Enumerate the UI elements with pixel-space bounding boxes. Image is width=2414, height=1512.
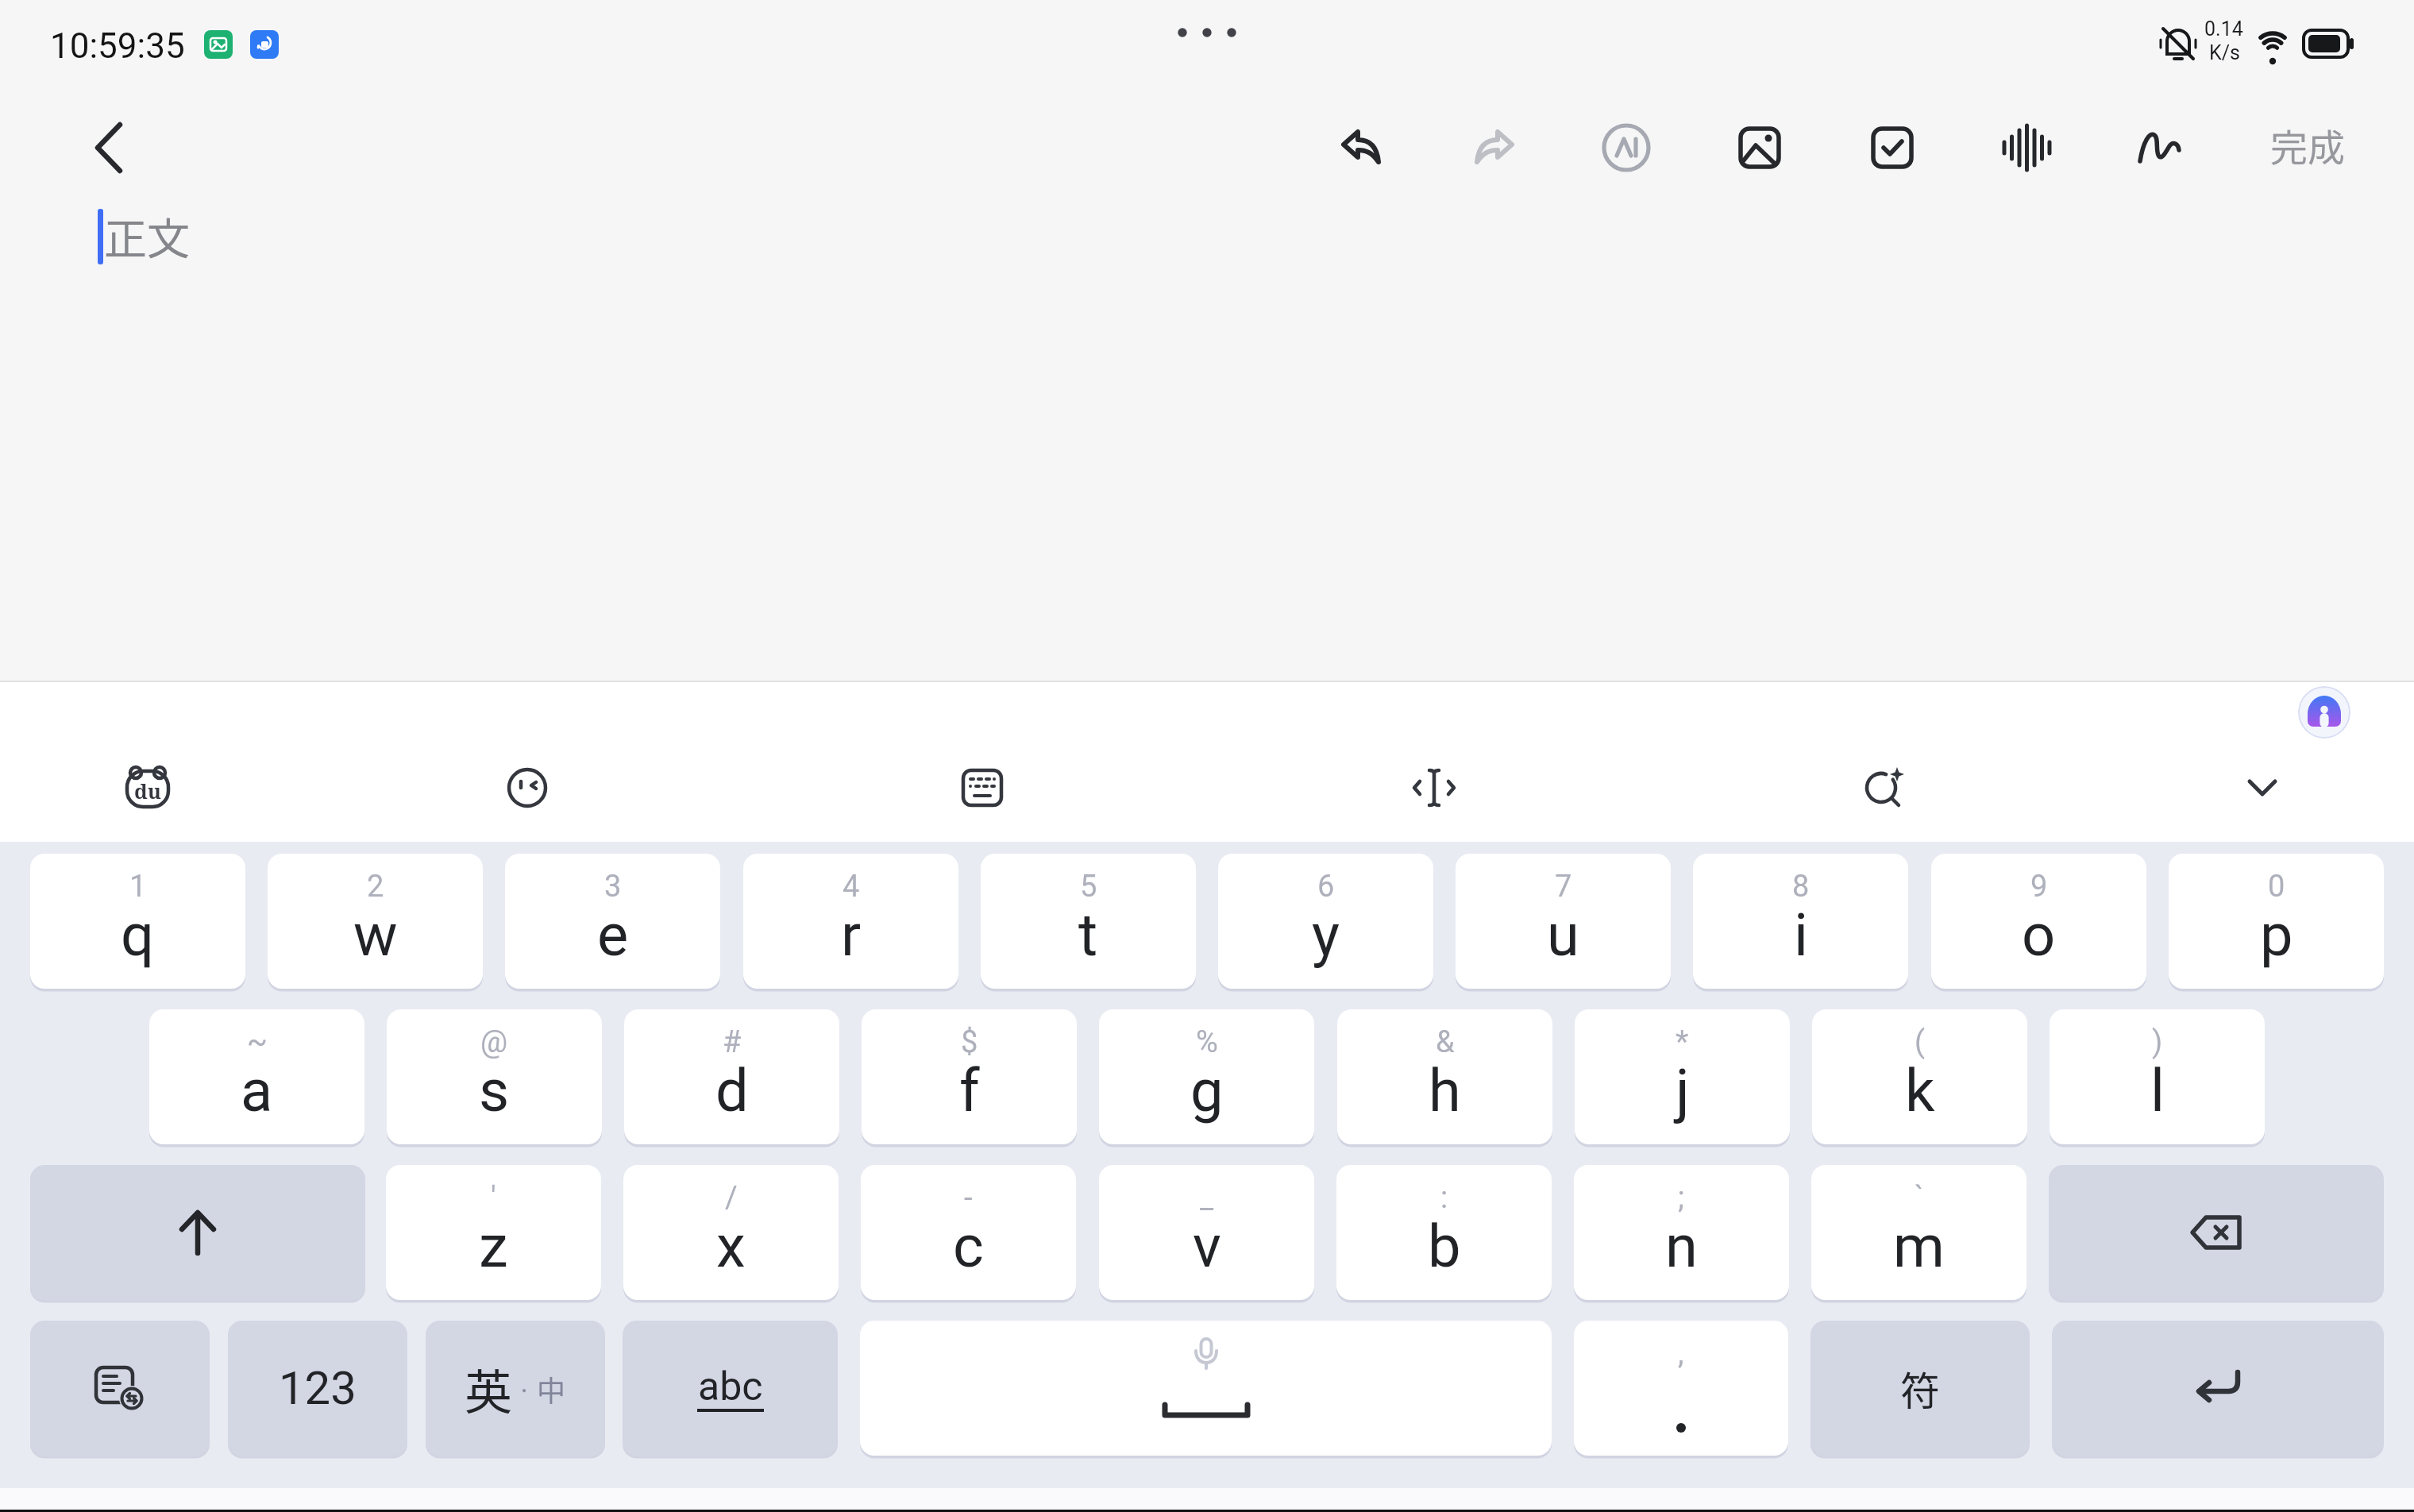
button[interactable]	[30, 1165, 365, 1300]
button[interactable]: 123	[228, 1321, 407, 1456]
staticText: $	[961, 1024, 978, 1060]
button[interactable]: #	[624, 1009, 839, 1144]
staticText: '	[491, 1180, 496, 1216]
staticText: K/s	[2209, 41, 2240, 64]
button[interactable]: 2	[268, 854, 483, 989]
button[interactable]	[1864, 767, 1905, 808]
button[interactable]: %	[1099, 1009, 1314, 1144]
staticText: -	[964, 1180, 973, 1216]
button[interactable]: ;	[1574, 1165, 1789, 1300]
staticText: 10:59:35	[50, 25, 185, 67]
staticText: &	[1436, 1024, 1455, 1060]
staticText: h	[1429, 1056, 1461, 1125]
button[interactable]: 1	[30, 854, 245, 989]
staticText: ;	[1678, 1180, 1685, 1216]
button[interactable]: )	[2050, 1009, 2265, 1144]
button[interactable]	[2138, 127, 2184, 168]
staticText: ·	[512, 1371, 537, 1406]
staticText: ,	[1678, 1336, 1684, 1371]
staticText: t	[1078, 901, 1098, 970]
staticText: s	[479, 1056, 510, 1125]
button[interactable]: *	[1575, 1009, 1790, 1144]
button[interactable]	[1602, 123, 1651, 172]
button[interactable]: (	[1812, 1009, 2027, 1144]
button[interactable]: $	[862, 1009, 1077, 1144]
button[interactable]: `	[1811, 1165, 2026, 1300]
button[interactable]: 3	[505, 854, 720, 989]
staticText: m	[1893, 1212, 1945, 1281]
button[interactable]	[2049, 1165, 2384, 1300]
button[interactable]	[1738, 126, 1781, 169]
button[interactable]	[1412, 767, 1456, 808]
button[interactable]	[2002, 125, 2053, 170]
staticText: 中	[537, 1368, 566, 1410]
button[interactable]	[2242, 772, 2283, 804]
button[interactable]: 9	[1931, 854, 2146, 989]
staticText: 5	[1080, 869, 1097, 904]
staticText: 0	[2268, 869, 2285, 904]
staticText: j	[1676, 1056, 1690, 1125]
staticText: 符	[1900, 1360, 1940, 1417]
staticText: _	[1200, 1180, 1214, 1216]
staticText: )	[2152, 1024, 2163, 1060]
staticText: /	[725, 1180, 738, 1216]
button[interactable]	[1472, 125, 1518, 170]
staticText: v	[1193, 1212, 1221, 1281]
staticText: i	[1794, 901, 1808, 970]
staticText: q	[121, 901, 155, 970]
staticText: #	[723, 1024, 742, 1060]
button[interactable]: :	[1336, 1165, 1552, 1300]
button[interactable]	[860, 1321, 1552, 1456]
button[interactable]	[1871, 126, 1914, 169]
staticText: 3	[604, 869, 622, 904]
button[interactable]: 完成	[2270, 118, 2345, 172]
button[interactable]: 0	[2169, 854, 2384, 989]
staticText: :	[1440, 1180, 1448, 1216]
button[interactable]: 5	[981, 854, 1196, 989]
staticText: x	[716, 1212, 746, 1281]
button[interactable]: ~	[149, 1009, 364, 1144]
staticText: p	[2260, 901, 2293, 970]
staticText: r	[841, 901, 862, 970]
button[interactable]: -	[861, 1165, 1076, 1300]
staticText: 9	[2030, 869, 2048, 904]
button[interactable]	[2298, 686, 2350, 739]
button[interactable]: 7	[1456, 854, 1671, 989]
button[interactable]: 符	[1811, 1321, 2030, 1456]
staticText: z	[479, 1212, 508, 1281]
staticText: c	[953, 1212, 984, 1281]
button[interactable]: 6	[1218, 854, 1433, 989]
staticText: %	[1196, 1024, 1218, 1060]
button[interactable]: &	[1337, 1009, 1552, 1144]
button[interactable]	[30, 1321, 210, 1456]
staticText: w	[353, 901, 398, 970]
button[interactable]: ,	[1574, 1321, 1788, 1456]
staticText: 4	[843, 869, 860, 904]
staticText: 正文	[104, 205, 190, 267]
button[interactable]: du	[124, 764, 172, 812]
button[interactable]: '	[386, 1165, 601, 1300]
staticText: @	[480, 1024, 508, 1060]
staticText: o	[2022, 901, 2056, 970]
button[interactable]	[2052, 1321, 2384, 1456]
button[interactable]: 英	[426, 1321, 605, 1456]
button[interactable]: 4	[743, 854, 958, 989]
button[interactable]	[507, 767, 548, 808]
staticText: u	[1547, 901, 1579, 970]
staticText: abc	[698, 1363, 763, 1410]
staticText: 0.14	[2204, 17, 2243, 40]
button[interactable]	[79, 118, 140, 178]
button[interactable]	[962, 769, 1003, 807]
button[interactable]: _	[1099, 1165, 1314, 1300]
button[interactable]: /	[623, 1165, 839, 1300]
staticText: 7	[1555, 869, 1572, 904]
button[interactable]	[1337, 125, 1383, 170]
staticText: b	[1428, 1212, 1461, 1281]
button[interactable]: @	[387, 1009, 602, 1144]
staticText: ~	[247, 1024, 268, 1060]
staticText: (	[1915, 1024, 1926, 1060]
staticText: 2	[367, 869, 384, 904]
button[interactable]: abc	[623, 1321, 838, 1456]
staticText: `	[1915, 1180, 1924, 1216]
button[interactable]: 8	[1693, 854, 1908, 989]
